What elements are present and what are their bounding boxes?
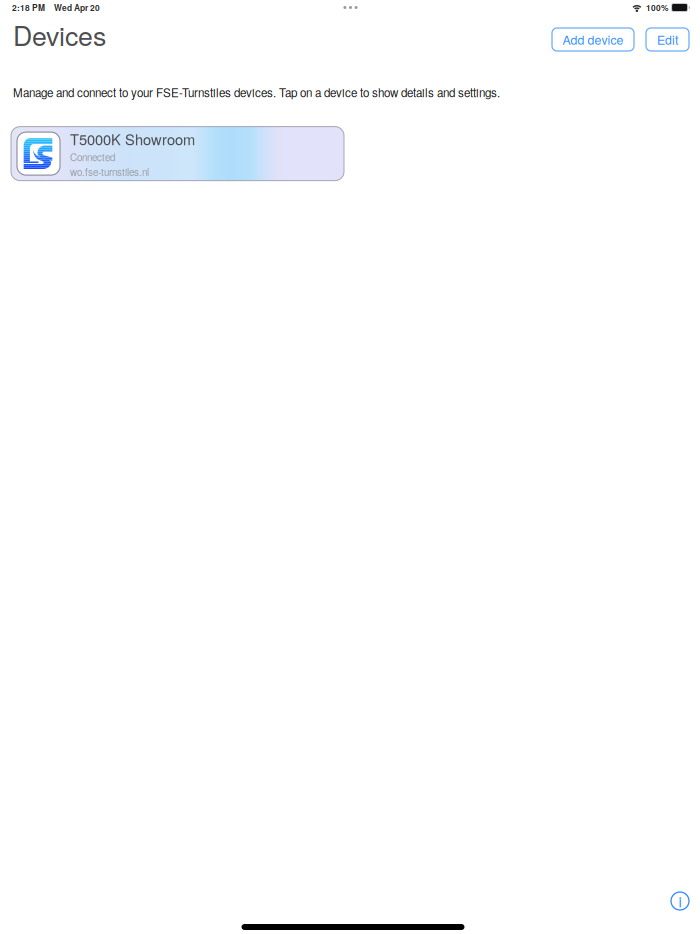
button[interactable]: Info	[667, 888, 693, 914]
button[interactable]: Add device	[552, 28, 634, 51]
staticText: wo.fse-turnstiles.nl	[70, 165, 149, 179]
button[interactable]: Edit	[646, 28, 689, 51]
staticText: Manage and connect to your FSE-Turnstile…	[13, 84, 500, 101]
staticText: 100%	[646, 1, 668, 13]
staticText: Edit	[657, 31, 678, 48]
staticText: Add device	[562, 31, 623, 48]
staticText: i	[678, 890, 681, 911]
staticText: 2:18 PM	[12, 1, 45, 13]
staticText: Connected	[70, 150, 115, 164]
staticText: Devices	[13, 15, 106, 54]
button[interactable]: T5000K Showroom	[11, 127, 344, 181]
staticText: T5000K Showroom	[70, 128, 195, 149]
staticText: Wed Apr 20	[54, 1, 100, 13]
